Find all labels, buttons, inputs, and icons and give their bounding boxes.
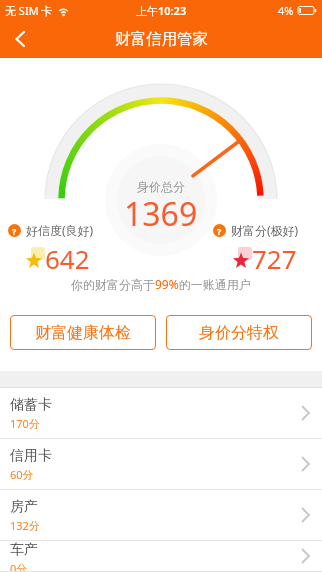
- staticText: 0分: [10, 561, 28, 571]
- button[interactable]: 身价分特权: [166, 315, 312, 350]
- button[interactable]: 房产: [0, 490, 322, 541]
- button[interactable]: 财富健康体检: [10, 315, 156, 350]
- staticText: 房产: [10, 498, 38, 516]
- button[interactable]: 储蓄卡: [0, 388, 322, 439]
- staticText: 上午10:23: [136, 3, 187, 18]
- staticText: 1369: [124, 192, 198, 236]
- staticText: 车产: [10, 541, 38, 559]
- staticText: 170分: [10, 416, 40, 431]
- staticText: 60分: [10, 467, 34, 482]
- button[interactable]: [0, 20, 40, 58]
- staticText: 你的财富分高于99%的一账通用户: [71, 276, 251, 292]
- staticText: ?: [12, 225, 17, 237]
- staticText: ?: [217, 225, 222, 237]
- staticText: 4%: [278, 3, 294, 18]
- button[interactable]: 车产: [0, 541, 322, 572]
- staticText: 无 SIM 卡: [5, 3, 53, 18]
- staticText: 财富健康体检: [35, 323, 131, 343]
- staticText: 身价总分: [137, 179, 185, 194]
- staticText: 727: [252, 241, 297, 276]
- button[interactable]: 信用卡: [0, 439, 322, 490]
- staticText: 132分: [10, 518, 40, 533]
- staticText: 信用卡: [10, 447, 52, 465]
- staticText: 储蓄卡: [10, 396, 52, 414]
- staticText: 好信度(良好): [26, 222, 94, 238]
- staticText: 身价分特权: [199, 323, 279, 343]
- staticText: 财富分(极好): [231, 222, 299, 238]
- staticText: 财富信用管家: [115, 29, 208, 49]
- staticText: 642: [45, 241, 90, 276]
